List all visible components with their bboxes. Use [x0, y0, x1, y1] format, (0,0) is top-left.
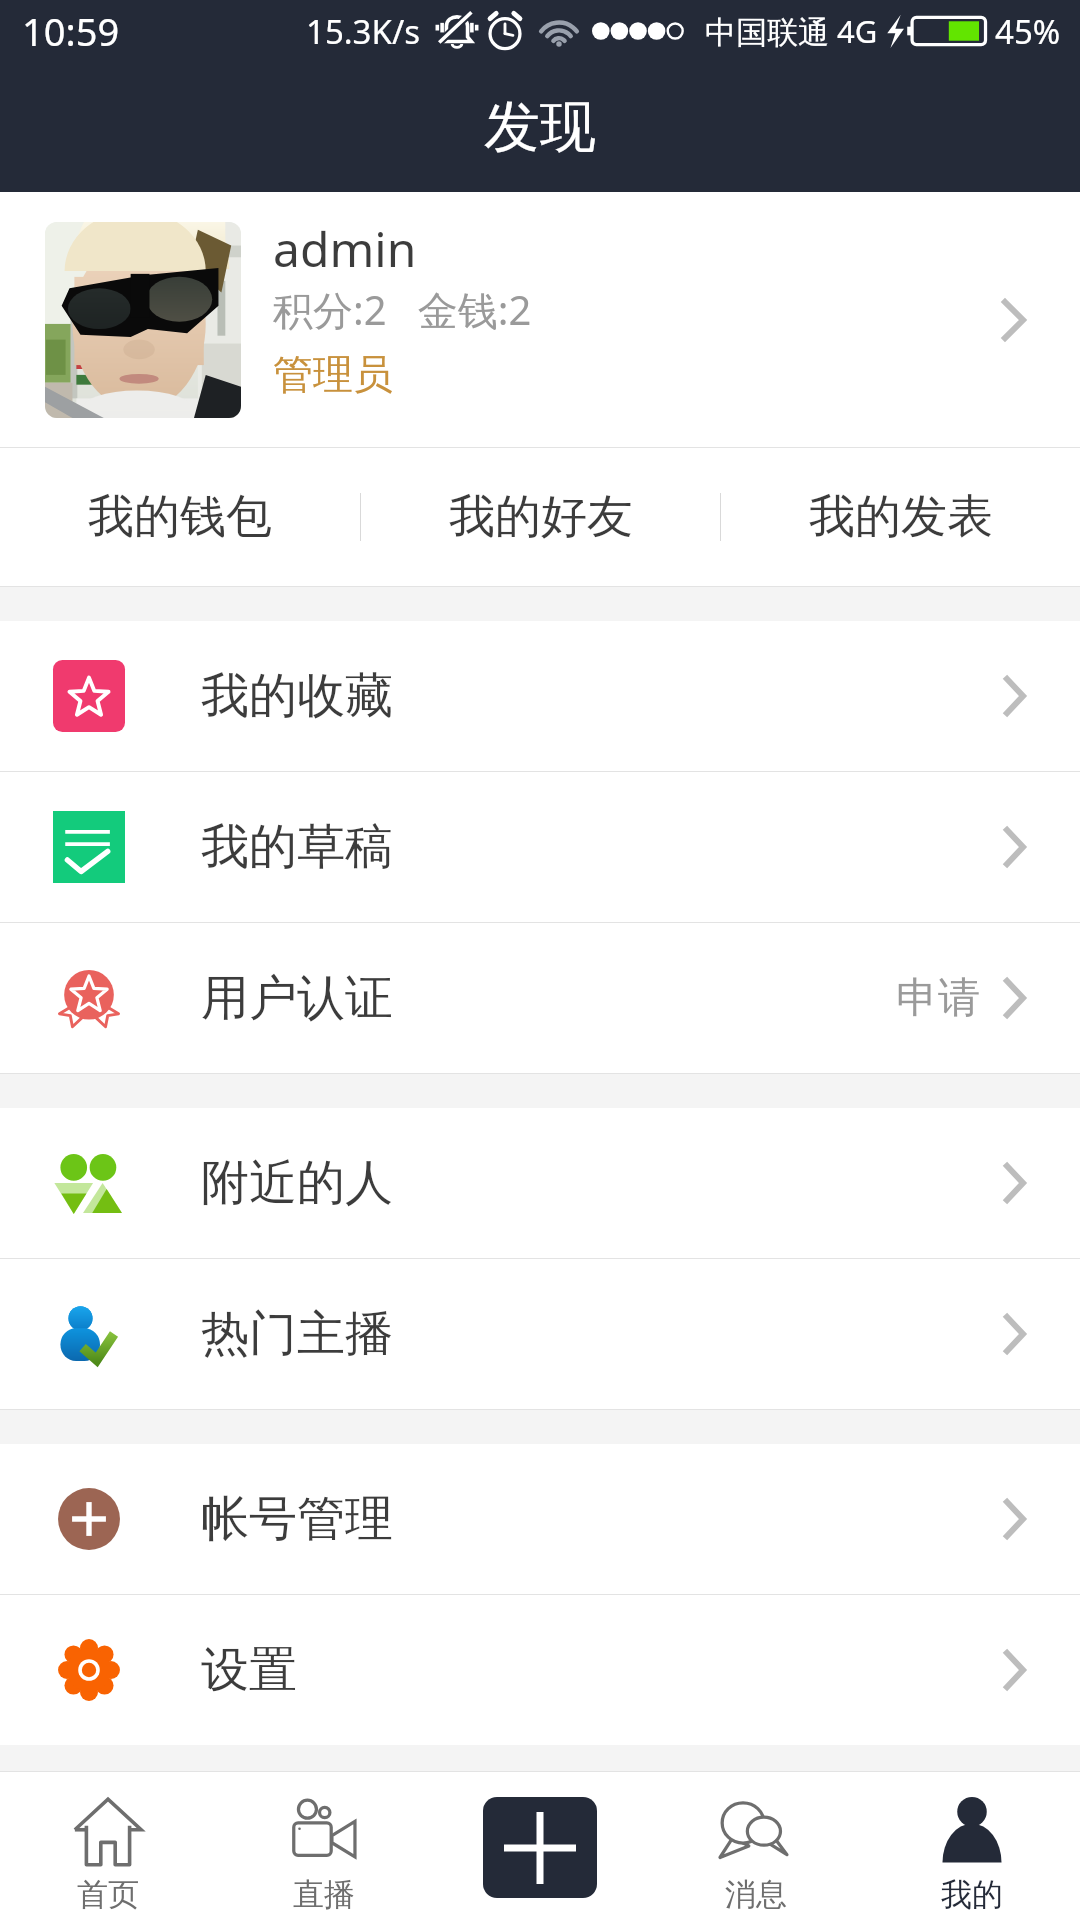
- button[interactable]: 帐号管理: [0, 1444, 1080, 1594]
- staticText: 10:59: [22, 5, 120, 57]
- button[interactable]: 设置: [0, 1595, 1080, 1745]
- staticText: 附近的人: [201, 1153, 393, 1213]
- button[interactable]: 热门主播: [0, 1259, 1080, 1409]
- staticText: 热门主播: [201, 1304, 393, 1364]
- staticText: 我的: [941, 1875, 1003, 1914]
- staticText: 我的钱包: [88, 488, 272, 546]
- staticText: 用户认证: [201, 968, 393, 1028]
- staticText: 我的收藏: [201, 666, 393, 726]
- button[interactable]: 我的草稿: [0, 772, 1080, 922]
- button[interactable]: 直播: [216, 1781, 432, 1920]
- staticText: 帐号管理: [201, 1489, 393, 1549]
- staticText: 我的发表: [809, 488, 993, 546]
- staticText: 申请: [896, 972, 980, 1025]
- staticText: admin: [273, 216, 417, 281]
- staticText: 45%: [995, 9, 1061, 54]
- staticText: 首页: [77, 1875, 139, 1914]
- staticText: 中国联通 4G: [705, 10, 878, 52]
- button[interactable]: 我的收藏: [0, 621, 1080, 771]
- button[interactable]: admin: [0, 192, 1080, 447]
- staticText: 设置: [201, 1640, 297, 1700]
- button[interactable]: 首页: [0, 1781, 216, 1920]
- staticText: 积分:2 金钱:2: [273, 282, 532, 337]
- button[interactable]: 我的好友: [361, 448, 720, 586]
- button[interactable]: 附近的人: [0, 1108, 1080, 1258]
- button[interactable]: 我的发表: [721, 448, 1080, 586]
- staticText: 发现: [484, 92, 596, 163]
- button[interactable]: 我的钱包: [0, 448, 360, 586]
- button[interactable]: Create post: [483, 1797, 597, 1898]
- staticText: 我的好友: [449, 488, 633, 546]
- button[interactable]: 消息: [648, 1781, 864, 1920]
- staticText: 直播: [293, 1875, 355, 1914]
- staticText: 消息: [725, 1875, 787, 1914]
- staticText: 我的草稿: [201, 817, 393, 877]
- staticText: 15.3K/s: [306, 9, 420, 54]
- button[interactable]: 用户认证: [0, 923, 1080, 1073]
- staticText: 管理员: [273, 349, 393, 399]
- button[interactable]: 我的: [864, 1781, 1080, 1920]
